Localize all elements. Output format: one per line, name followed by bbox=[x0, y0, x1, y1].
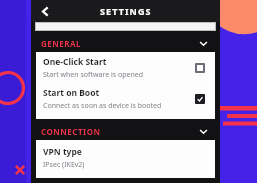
button[interactable]: One-Click Start bbox=[36, 52, 215, 83]
staticText: IPsec (IKEv2) bbox=[43, 160, 85, 170]
other: Collapse GENERAL bbox=[197, 37, 210, 50]
staticText: One-Click Start bbox=[43, 56, 107, 68]
button[interactable]: GENERAL bbox=[41, 35, 210, 52]
other: Collapse CONNECTION bbox=[197, 125, 210, 138]
button[interactable]: Back bbox=[35, 1, 55, 21]
button[interactable] bbox=[35, 22, 216, 31]
staticText: VPN type bbox=[43, 146, 82, 158]
button[interactable]: VPN type bbox=[36, 140, 215, 178]
staticText: Start on Boot bbox=[43, 87, 100, 99]
staticText: CONNECTION bbox=[41, 126, 101, 137]
button[interactable]: CONNECTION bbox=[41, 123, 210, 140]
staticText: GENERAL bbox=[41, 38, 82, 49]
staticText: Connect as soon as device is booted bbox=[43, 101, 162, 111]
button[interactable]: Start on Boot bbox=[36, 83, 215, 114]
staticText: Start when software is opened bbox=[43, 70, 143, 80]
staticText: SETTINGS bbox=[100, 5, 152, 17]
